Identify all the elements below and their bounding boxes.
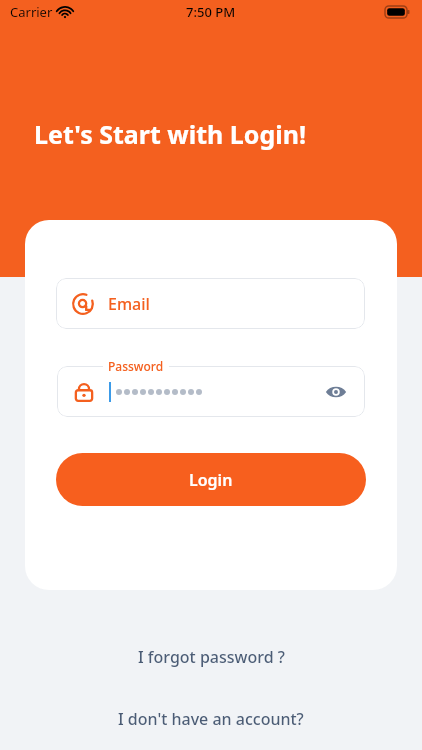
staticText: Email [108,293,150,315]
staticText: Login [189,469,233,491]
button[interactable]: Show password [321,377,351,407]
staticText: Password [108,358,164,374]
button[interactable]: I forgot password ? [132,640,291,674]
staticText: Let's Start with Login! [34,117,306,151]
staticText: 7:50 PM [186,3,236,21]
button[interactable]: Login [56,453,366,506]
button[interactable]: I don't have an account? [112,702,310,736]
button[interactable]: Email [56,278,365,329]
staticText: Carrier [10,3,53,21]
staticText: I forgot password ? [138,646,285,668]
staticText: I don't have an account? [118,708,304,730]
button[interactable] [57,366,365,417]
